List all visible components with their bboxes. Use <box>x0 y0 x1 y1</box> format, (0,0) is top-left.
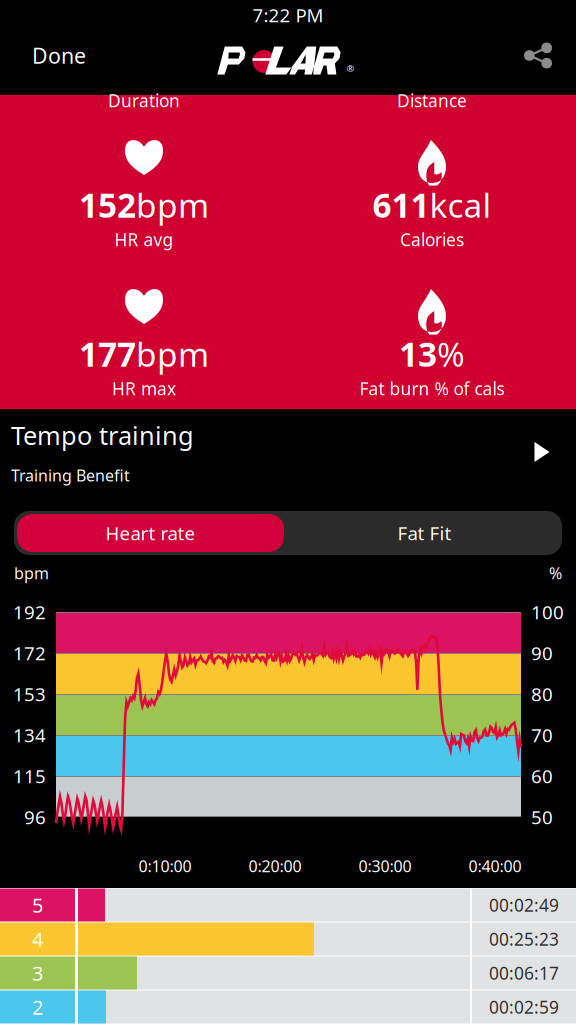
staticText: Training Benefit <box>11 465 130 486</box>
staticText: 115 <box>13 764 46 788</box>
staticText: % <box>549 562 562 584</box>
staticText: ® <box>346 62 354 74</box>
staticText: 00:06:17 <box>489 961 559 984</box>
staticText: 0:20:00 <box>248 855 301 877</box>
staticText: 0:10:00 <box>138 855 191 877</box>
staticText: 7:22 PM <box>252 3 323 27</box>
staticText: 0:30:00 <box>358 855 411 877</box>
staticText: Done <box>32 41 86 70</box>
staticText: 13 <box>399 332 437 376</box>
staticText: 00:02:59 <box>489 995 559 1018</box>
staticText: 00:25:23 <box>489 927 559 950</box>
staticText: 50 <box>531 805 553 829</box>
staticText: 96 <box>24 805 46 829</box>
staticText: Tempo training <box>11 418 194 452</box>
staticText: HR avg <box>114 228 173 251</box>
staticText: Heart rate <box>105 521 195 545</box>
button[interactable]: Play <box>516 418 568 486</box>
staticText: bpm <box>14 562 49 584</box>
staticText: % <box>437 332 465 376</box>
staticText: HR max <box>112 377 176 400</box>
staticText: 2 <box>32 994 43 1020</box>
staticText: 90 <box>531 641 553 665</box>
staticText: Fat burn % of cals <box>359 377 504 400</box>
staticText: 153 <box>13 682 46 706</box>
staticText: 134 <box>13 723 46 747</box>
staticText: 4 <box>32 926 43 952</box>
staticText: bpm <box>136 332 209 376</box>
button[interactable]: Done <box>0 30 98 81</box>
staticText: 611 <box>372 183 429 227</box>
staticText: bpm <box>136 183 209 227</box>
staticText: 80 <box>531 682 553 706</box>
button[interactable]: Fat Fit <box>287 511 562 555</box>
staticText: 177 <box>79 332 136 376</box>
staticText: 5 <box>32 892 43 918</box>
staticText: kcal <box>429 183 491 227</box>
staticText: 60 <box>531 764 553 788</box>
staticText: 172 <box>13 641 46 665</box>
staticText: 0:40:00 <box>468 855 521 877</box>
staticText: 00:02:49 <box>489 893 559 916</box>
staticText: Fat Fit <box>397 521 451 545</box>
staticText: Duration <box>108 89 180 112</box>
staticText: 70 <box>531 723 553 747</box>
staticText: 3 <box>32 960 43 986</box>
staticText: Calories <box>400 228 464 251</box>
staticText: 192 <box>13 600 46 624</box>
staticText: Distance <box>397 89 467 112</box>
staticText: 100 <box>531 600 564 624</box>
staticText: 152 <box>79 183 136 227</box>
button[interactable]: Share <box>500 30 576 81</box>
button[interactable]: Heart rate <box>14 511 287 555</box>
